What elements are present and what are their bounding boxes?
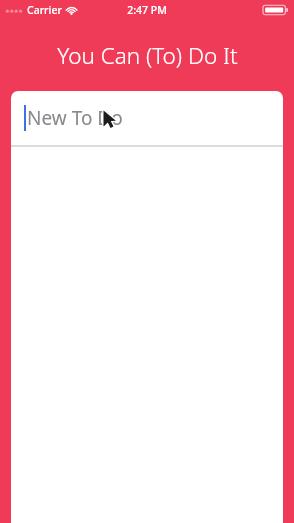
staticText: You Can (To) Do It	[57, 40, 238, 71]
staticText: Carrier	[27, 3, 62, 17]
button[interactable]: New To Do	[11, 91, 283, 145]
staticText: 2:47 PM	[127, 3, 167, 17]
staticText: New To Do	[27, 105, 123, 131]
